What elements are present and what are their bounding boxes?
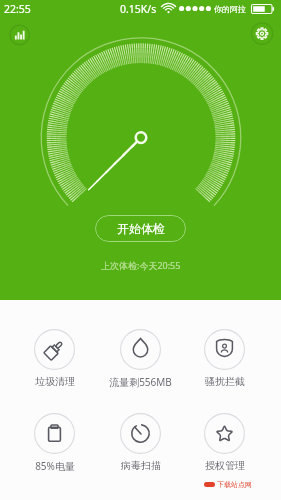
staticText: 授权管理	[205, 459, 245, 472]
button[interactable]: 病毒扫描	[94, 413, 187, 472]
staticText: 骚扰拦截	[205, 375, 245, 388]
button[interactable]: 流量统计	[5, 21, 34, 50]
staticText: 流量剩556MB	[109, 375, 172, 389]
staticText: 垃圾清理	[35, 375, 75, 388]
button[interactable]: 设置	[248, 20, 275, 47]
staticText: 上次体检:今天20:55	[101, 259, 181, 271]
button[interactable]: 开始体检	[95, 215, 186, 242]
staticText: 开始体检	[117, 221, 165, 236]
staticText: 病毒扫描	[121, 459, 161, 472]
staticText: 85%电量	[35, 459, 75, 473]
staticText: 下载站点网	[217, 480, 252, 489]
staticText: 0.15K/s	[120, 2, 157, 16]
button[interactable]: 骚扰拦截	[178, 329, 271, 388]
button[interactable]: 授权管理	[178, 413, 271, 472]
button[interactable]: 85%电量	[8, 413, 101, 473]
staticText: 你的阿拉	[214, 4, 246, 14]
button[interactable]: 流量剩556MB	[94, 329, 187, 389]
staticText: 22:55	[4, 2, 31, 16]
button[interactable]: 垃圾清理	[8, 329, 101, 388]
